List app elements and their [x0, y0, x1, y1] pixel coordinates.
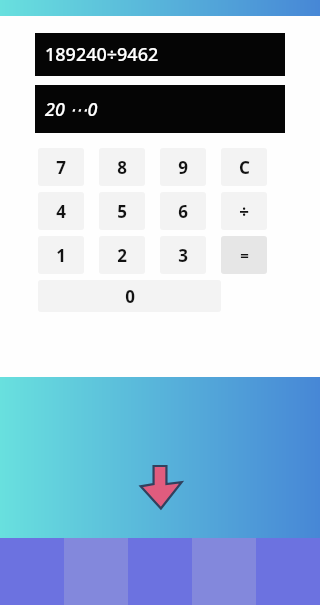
staticText: ÷ — [239, 200, 249, 223]
button[interactable]: 5 — [99, 192, 145, 230]
staticText: 4 — [56, 200, 66, 223]
staticText: 189240÷9462 — [45, 42, 159, 67]
button[interactable]: 3 — [160, 236, 206, 274]
staticText: 3 — [178, 244, 188, 267]
staticText: 20 ⋯0 — [45, 97, 98, 122]
button[interactable]: 2 — [99, 236, 145, 274]
button[interactable]: C — [221, 148, 267, 186]
button[interactable]: 20 ⋯0 — [35, 85, 285, 133]
button[interactable]: 8 — [99, 148, 145, 186]
button[interactable]: 6 — [160, 192, 206, 230]
button[interactable]: 1 — [38, 236, 84, 274]
button[interactable]: = — [221, 236, 267, 274]
staticText: = — [240, 245, 249, 265]
staticText: 1 — [56, 244, 66, 267]
staticText: 2 — [117, 244, 127, 267]
button[interactable]: 189240÷9462 — [35, 33, 285, 76]
button[interactable]: 4 — [38, 192, 84, 230]
staticText: 7 — [56, 156, 66, 179]
staticText: 9 — [178, 156, 188, 179]
staticText: 8 — [117, 156, 127, 179]
button[interactable]: ÷ — [221, 192, 267, 230]
staticText: 0 — [125, 285, 135, 308]
staticText: C — [239, 156, 250, 179]
button[interactable]: 7 — [38, 148, 84, 186]
button[interactable]: Scroll down — [137, 461, 183, 511]
staticText: 6 — [178, 200, 188, 223]
button[interactable]: 0 — [38, 280, 221, 312]
staticText: 5 — [117, 200, 127, 223]
button[interactable]: 9 — [160, 148, 206, 186]
